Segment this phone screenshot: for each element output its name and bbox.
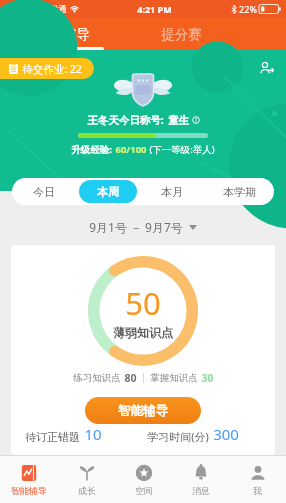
- staticText: 22%: [239, 3, 257, 15]
- button[interactable]: 添加好友: [254, 56, 278, 80]
- button[interactable]: 提分赛: [126, 18, 236, 50]
- staticText: 50: [125, 282, 161, 324]
- staticText: 升级经验:: [71, 143, 112, 156]
- button[interactable]: 本周: [79, 180, 137, 203]
- staticText: 空间: [135, 485, 153, 496]
- staticText: 今日: [33, 185, 55, 199]
- button[interactable]: 学习时间(分): [143, 424, 265, 447]
- staticText: 提分赛: [161, 26, 202, 43]
- staticText: 本学期: [223, 185, 256, 199]
- staticText: 本月: [161, 185, 183, 199]
- button[interactable]: 空间: [115, 456, 172, 503]
- staticText: 10: [84, 424, 102, 444]
- button[interactable]: 成长: [58, 456, 115, 503]
- staticText: 智能辅导: [118, 403, 168, 419]
- staticText: 300: [213, 424, 239, 444]
- staticText: 4:21 PM: [137, 3, 172, 15]
- button[interactable]: 9月1号 － 9月7号: [85, 215, 201, 239]
- staticText: 60/100: [115, 143, 147, 156]
- button[interactable]: 待交作业: 22: [0, 58, 94, 79]
- button[interactable]: 待订正错题: [21, 424, 143, 447]
- button[interactable]: 本学期: [207, 180, 271, 203]
- button[interactable]: 我: [229, 456, 286, 503]
- staticText: 智能辅导: [36, 26, 90, 43]
- staticText: 薄弱知识点: [113, 325, 173, 340]
- staticText: 待交作业: 22: [22, 62, 82, 76]
- staticText: 我: [253, 485, 262, 496]
- staticText: 本周: [97, 185, 119, 199]
- button[interactable]: 消息: [172, 456, 229, 503]
- staticText: 练习知识点: [73, 372, 121, 384]
- button[interactable]: 智能辅导: [0, 18, 126, 50]
- staticText: 智能辅导: [11, 485, 47, 496]
- staticText: 成长: [78, 485, 96, 496]
- staticText: (下一等级:举人): [149, 143, 215, 156]
- staticText: 学习时间(分): [147, 429, 209, 444]
- button[interactable]: 本月: [143, 180, 201, 203]
- staticText: 消息: [192, 485, 210, 496]
- staticText: 80: [124, 371, 137, 385]
- staticText: 9月1号 － 9月7号: [89, 219, 183, 235]
- staticText: 待订正错题: [25, 430, 80, 444]
- button[interactable]: 智能辅导: [85, 397, 201, 424]
- staticText: 中国联通: [33, 4, 67, 15]
- button[interactable]: 智能辅导: [0, 456, 58, 503]
- staticText: 王冬天今日称号:: [87, 113, 164, 127]
- staticText: 掌握知识点: [150, 372, 198, 384]
- staticText: 30: [201, 371, 214, 385]
- button[interactable]: 今日: [15, 180, 73, 203]
- staticText: 童生: [168, 114, 189, 127]
